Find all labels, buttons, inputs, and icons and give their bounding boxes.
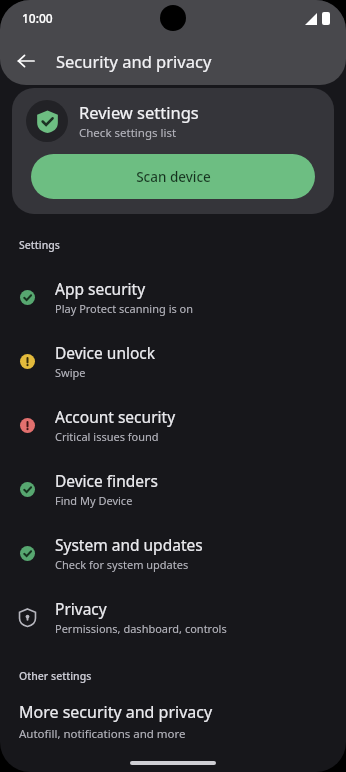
staticText: Device finders xyxy=(55,470,158,491)
staticText: Permissions, dashboard, controls xyxy=(55,621,227,636)
staticText: Check settings list xyxy=(79,125,177,141)
staticText: Account security xyxy=(55,406,176,427)
staticText: Scan device xyxy=(136,168,211,186)
staticText: Swipe xyxy=(55,365,86,380)
staticText: Review settings xyxy=(79,101,199,123)
button[interactable]: Account security xyxy=(0,393,346,457)
staticText: Privacy xyxy=(55,598,107,619)
staticText: Settings xyxy=(19,238,60,252)
staticText: Security and privacy xyxy=(56,50,212,72)
staticText: Device unlock xyxy=(55,342,156,363)
staticText: Other settings xyxy=(19,669,92,683)
staticText: Check for system updates xyxy=(55,557,189,572)
button[interactable]: Back xyxy=(9,44,43,78)
staticText: Find My Device xyxy=(55,493,133,508)
button[interactable]: Device unlock xyxy=(0,329,346,393)
staticText: 10:00 xyxy=(22,10,53,26)
button[interactable]: Device finders xyxy=(0,457,346,521)
staticText: System and updates xyxy=(55,534,203,555)
staticText: Autofill, notifications and more xyxy=(19,726,186,742)
staticText: Critical issues found xyxy=(55,429,159,444)
button[interactable]: Privacy xyxy=(0,585,346,649)
staticText: More security and privacy xyxy=(19,701,213,723)
staticText: Play Protect scanning is on xyxy=(55,301,194,316)
button[interactable]: More security and privacy xyxy=(0,699,346,752)
button[interactable]: Scan device xyxy=(31,154,315,199)
staticText: App security xyxy=(55,278,146,299)
button[interactable]: Review settings xyxy=(12,88,334,214)
button[interactable]: App security xyxy=(0,265,346,329)
button[interactable]: System and updates xyxy=(0,521,346,585)
